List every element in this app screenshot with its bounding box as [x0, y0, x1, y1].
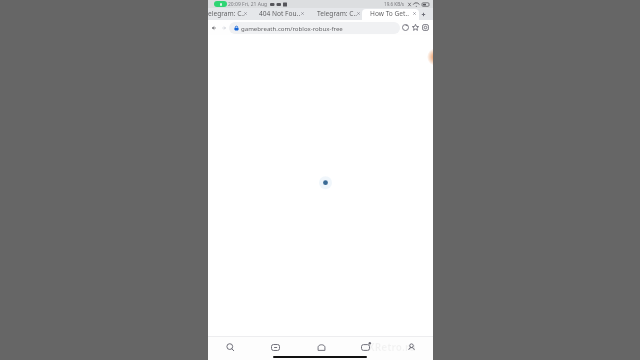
button[interactable]: Back [209, 20, 219, 35]
button[interactable]: gamebreath.com/roblox-robux-free [229, 22, 400, 34]
button[interactable]: Close tab [411, 7, 418, 19]
staticText: elegram: C.. [208, 9, 245, 18]
button[interactable]: Forward [219, 20, 229, 35]
staticText: XRetro.ru [368, 340, 416, 354]
button[interactable]: Menu [420, 20, 430, 35]
button[interactable]: Close tab [242, 7, 249, 19]
button[interactable]: Reload [400, 20, 410, 35]
button[interactable]: Home [306, 338, 336, 357]
button[interactable]: Downloads [260, 338, 290, 357]
button[interactable]: Bookmark [410, 20, 420, 35]
staticText: 20:09 Fri, 21 Aug [228, 1, 268, 8]
button[interactable]: 404 Not Fou.. [259, 7, 301, 19]
button[interactable]: How To Get.. [370, 7, 409, 19]
staticText: How To Get.. [370, 9, 409, 18]
staticText: 404 Not Fou.. [259, 9, 301, 18]
staticText: Telegram: C.. [317, 9, 358, 18]
button[interactable]: How To Get tab [362, 9, 419, 20]
button[interactable]: Close tab [355, 7, 362, 19]
button[interactable]: Search [215, 338, 245, 357]
staticText: 19.6 KB/s [384, 1, 405, 7]
button[interactable]: Telegram: C.. [317, 7, 358, 19]
button[interactable]: Close tab [299, 7, 306, 19]
button[interactable]: Tabs [350, 338, 380, 357]
staticText: gamebreath.com/roblox-robux-free [241, 24, 343, 32]
button[interactable]: elegram: C.. [208, 7, 245, 19]
button[interactable]: New tab [417, 8, 430, 20]
button[interactable]: Profile [396, 338, 426, 357]
